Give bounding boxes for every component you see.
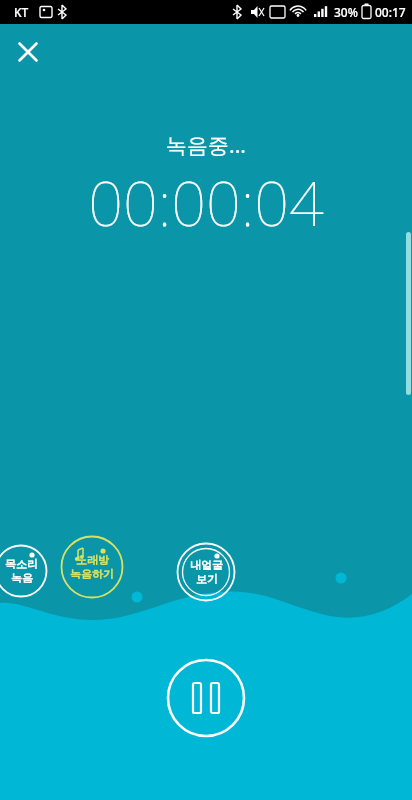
button[interactable]: 내얼굴 보기: [176, 542, 236, 602]
staticText: 녹음중...: [166, 131, 246, 160]
staticText: 녹음하기: [70, 567, 114, 581]
button[interactable]: Pause recording: [166, 658, 246, 738]
staticText: 00:00:04: [88, 161, 324, 244]
button[interactable]: Close: [11, 35, 45, 69]
staticText: 내얼굴: [190, 558, 223, 572]
button[interactable]: 목소리 녹음: [0, 544, 48, 598]
staticText: 목소리: [5, 557, 38, 571]
button[interactable]: 노래방 녹음하기: [60, 535, 124, 599]
staticText: 보기: [196, 572, 218, 586]
staticText: 녹음: [11, 571, 33, 585]
staticText: 30%: [334, 4, 358, 20]
staticText: 00:17: [375, 4, 406, 20]
staticText: KT: [14, 4, 29, 20]
staticText: 노래방: [76, 553, 109, 567]
